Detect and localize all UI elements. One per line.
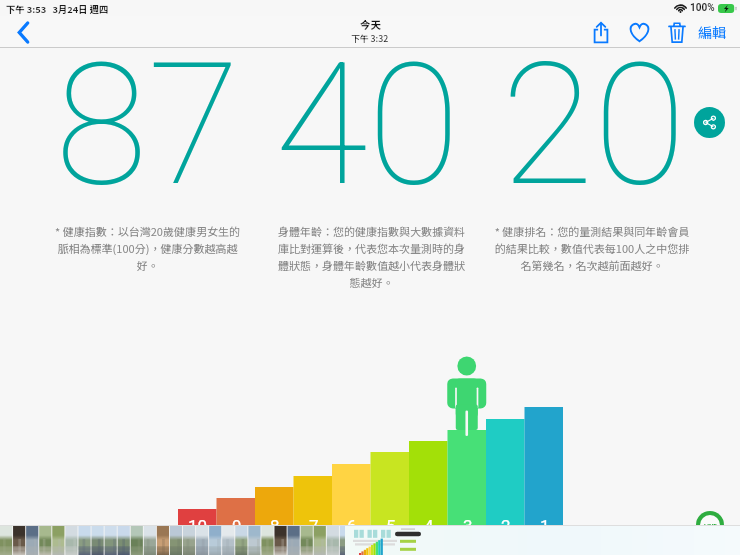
- button[interactable]: 編輯: [698, 22, 726, 42]
- staticText: 7: [309, 516, 319, 536]
- staticText: 8: [270, 516, 280, 536]
- staticText: LINE: [704, 522, 717, 529]
- button[interactable]: Back: [6, 17, 40, 47]
- button[interactable]: Share: [582, 17, 620, 47]
- staticText: 下午 3:53 3月24日 週四: [6, 2, 109, 15]
- staticText: * 健康指數：以台灣20歲健康男女生的脈相為標準(100分)，健康分數越高越好。: [51, 223, 244, 273]
- staticText: 編輯: [698, 22, 726, 42]
- button[interactable]: Favorite: [620, 17, 658, 47]
- staticText: 87: [55, 26, 241, 224]
- staticText: 100%: [690, 2, 715, 14]
- staticText: * 健康排名：您的量測結果與同年齡會員的結果比較，數值代表每100人之中您排名第…: [494, 223, 690, 273]
- button[interactable]: Delete: [658, 17, 696, 47]
- staticText: 下午 3:32: [351, 32, 389, 45]
- button[interactable]: Share: [694, 107, 725, 138]
- staticText: 2: [501, 516, 511, 536]
- staticText: 身體年齡：您的健康指數與大數據資料庫比對運算後，代表您本次量測時的身體狀態，身體…: [276, 223, 467, 290]
- staticText: 5: [386, 516, 396, 536]
- staticText: 4: [424, 516, 434, 536]
- staticText: 10: [188, 516, 208, 536]
- staticText: 9: [232, 516, 242, 536]
- staticText: 3: [463, 516, 473, 536]
- staticText: 20: [501, 26, 687, 224]
- staticText: 今天: [360, 17, 381, 32]
- staticText: 40: [275, 26, 461, 224]
- button[interactable]: Share to LINE: [696, 511, 724, 539]
- staticText: 6: [347, 516, 357, 536]
- staticText: 1: [540, 516, 550, 536]
